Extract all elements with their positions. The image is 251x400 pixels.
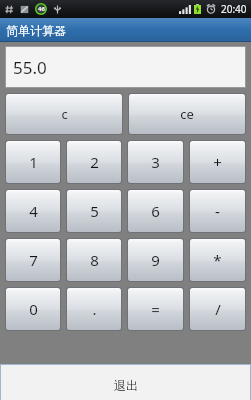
staticText: 7 (29, 250, 38, 270)
button[interactable]: + (190, 141, 245, 183)
staticText: 2 (90, 152, 99, 172)
button[interactable]: 1 (6, 141, 60, 183)
button[interactable]: . (67, 288, 121, 330)
staticText: c (61, 105, 68, 123)
staticText: 8 (90, 250, 99, 270)
staticText: + (213, 152, 222, 172)
staticText: 5 (90, 201, 99, 221)
button[interactable]: - (190, 190, 245, 232)
button[interactable]: 退出 (1, 365, 250, 400)
button[interactable]: 2 (67, 141, 121, 183)
staticText: * (213, 250, 222, 270)
staticText: 退出 (114, 378, 138, 393)
button[interactable]: 5 (67, 190, 121, 232)
staticText: / (215, 299, 221, 319)
button[interactable]: 4 (6, 190, 60, 232)
staticText: = (151, 299, 160, 319)
button[interactable]: 0 (6, 288, 60, 330)
staticText: 20:40 (221, 2, 247, 16)
staticText: 简单计算器 (6, 23, 66, 38)
button[interactable]: c (6, 94, 122, 134)
staticText: 9 (151, 250, 160, 270)
staticText: 6 (151, 201, 160, 221)
button[interactable]: = (128, 288, 183, 330)
staticText: 3 (151, 152, 160, 172)
staticText: . (92, 299, 97, 319)
button[interactable]: 6 (128, 190, 183, 232)
staticText: 1 (29, 152, 38, 172)
button[interactable]: * (190, 239, 245, 281)
staticText: ce (180, 105, 194, 123)
button[interactable]: 8 (67, 239, 121, 281)
button[interactable]: / (190, 288, 245, 330)
staticText: 0 (29, 299, 38, 319)
staticText: 55.0 (13, 56, 47, 79)
button[interactable]: 9 (128, 239, 183, 281)
staticText: - (215, 201, 220, 221)
button[interactable]: 3 (128, 141, 183, 183)
staticText: 46 (38, 5, 45, 13)
button[interactable]: ce (129, 94, 245, 134)
button[interactable]: 7 (6, 239, 60, 281)
staticText: 4 (29, 201, 38, 221)
